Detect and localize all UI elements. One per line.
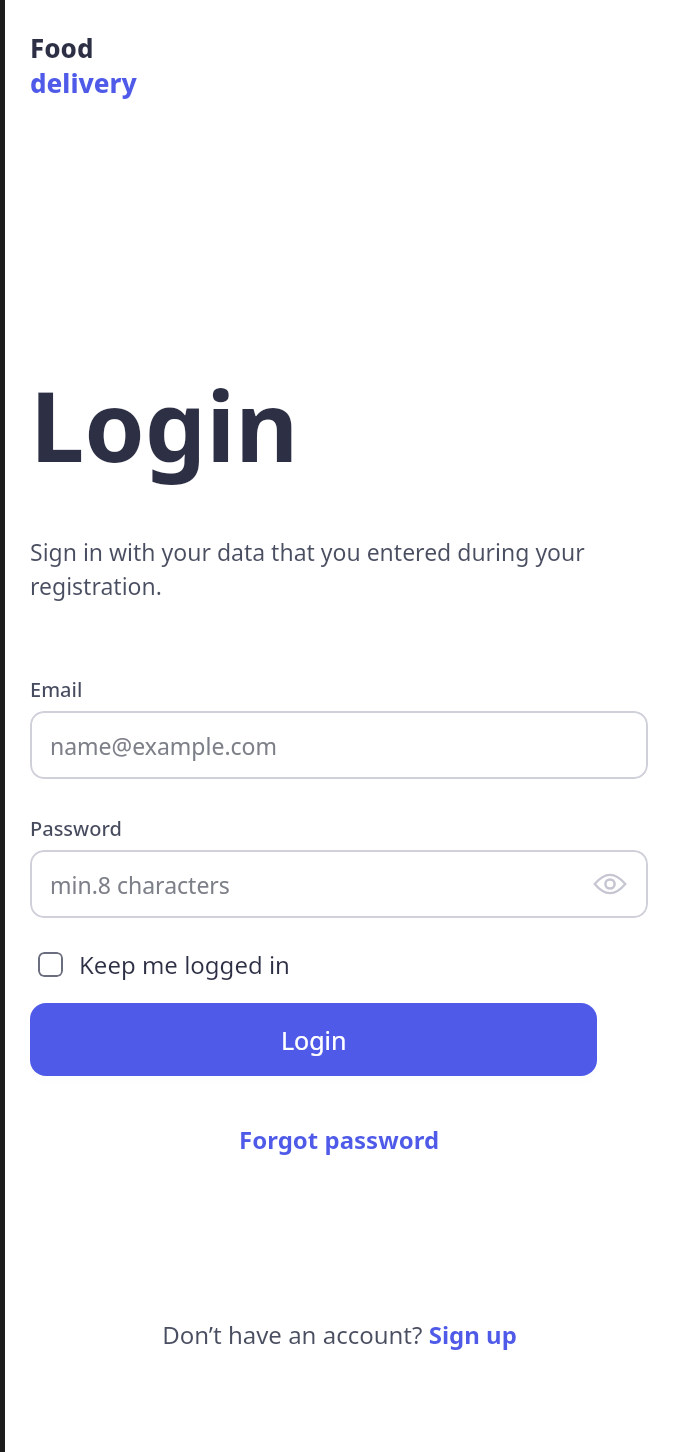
staticText: Food bbox=[30, 30, 94, 65]
staticText: min.8 characters bbox=[50, 869, 230, 900]
button[interactable]: Show password bbox=[586, 860, 634, 908]
staticText: delivery bbox=[30, 65, 137, 100]
staticText: name@example.com bbox=[50, 730, 278, 761]
button[interactable]: Forgot password bbox=[229, 1117, 450, 1162]
button[interactable]: name@example.com bbox=[30, 711, 648, 779]
staticText: Sign in with your data that you entered … bbox=[30, 536, 600, 601]
staticText: Don’t have an account? Sign up bbox=[162, 1318, 517, 1351]
staticText: Login bbox=[30, 358, 299, 490]
staticText: Email bbox=[30, 676, 83, 703]
button[interactable]: Don’t have an account? Sign up bbox=[154, 1312, 525, 1357]
button[interactable]: Login bbox=[30, 1003, 597, 1076]
staticText: Password bbox=[30, 815, 122, 842]
staticText: Forgot password bbox=[239, 1123, 440, 1156]
staticText: Keep me logged in bbox=[79, 948, 290, 981]
staticText: Login bbox=[281, 1023, 347, 1057]
button[interactable]: min.8 characters bbox=[30, 850, 648, 918]
button[interactable]: Keep me logged in bbox=[36, 944, 292, 985]
